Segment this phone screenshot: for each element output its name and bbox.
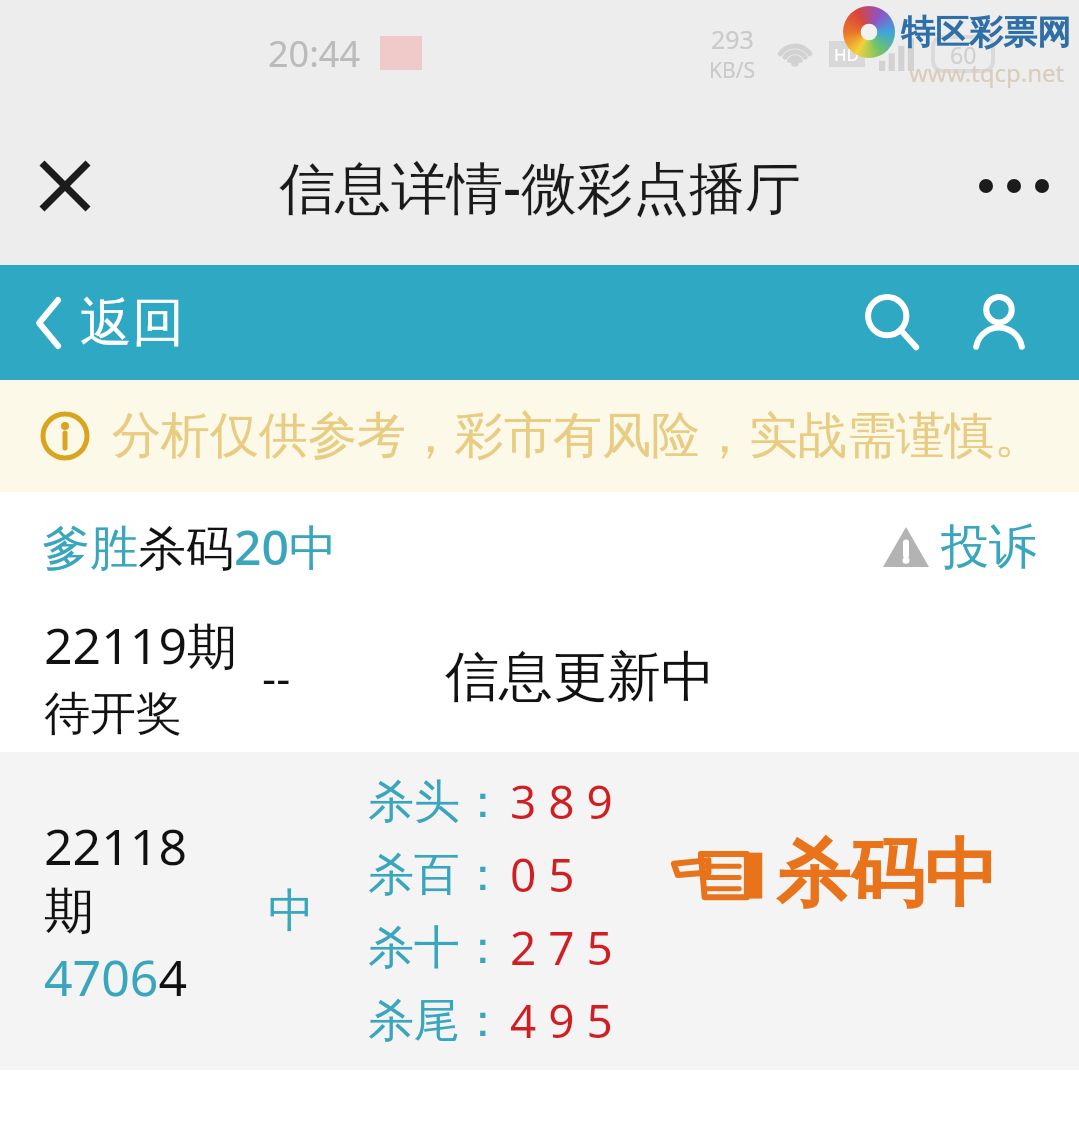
staticText: 信息更新中 — [445, 643, 715, 711]
staticText: 返回 — [80, 290, 184, 356]
staticText: 杀十： — [368, 919, 506, 977]
staticText: 杀百： — [368, 846, 506, 904]
staticText: -- — [262, 647, 291, 707]
staticText: 杀尾： — [368, 992, 506, 1050]
button[interactable]: 返回 — [36, 290, 184, 356]
staticText: 特区彩票网 — [901, 11, 1071, 54]
staticText: 爹胜杀码20中 — [42, 514, 337, 580]
staticText: 投诉 — [941, 517, 1037, 577]
button[interactable]: More options — [971, 143, 1057, 229]
staticText: 0 5 — [510, 843, 575, 906]
staticText: 20:44 — [268, 29, 361, 78]
button[interactable]: Account — [959, 283, 1039, 363]
button[interactable]: 22118 — [0, 752, 1079, 1070]
staticText: 47064 — [44, 943, 187, 1011]
staticText: 22118 — [44, 812, 187, 880]
staticText: 杀头： — [368, 773, 506, 831]
button[interactable]: 投诉 — [881, 517, 1037, 577]
button[interactable]: Close — [24, 145, 106, 227]
staticText: 杀码中 — [776, 828, 998, 921]
staticText: 60 — [950, 39, 977, 70]
staticText: 期 — [44, 880, 94, 943]
staticText: 待开奖 — [44, 685, 182, 743]
staticText: 293 — [711, 22, 754, 56]
staticText: 信息详情-微彩点播厅 — [279, 148, 801, 224]
staticText: 3 8 9 — [510, 770, 613, 833]
staticText: KB/S — [709, 56, 755, 85]
button[interactable]: Search — [853, 283, 933, 363]
staticText: 4 9 5 — [510, 989, 613, 1052]
staticText: www.tqcp.net — [909, 56, 1065, 89]
staticText: 22119期 — [44, 611, 237, 679]
staticText: 2 7 5 — [510, 916, 613, 979]
staticText: 中 — [268, 882, 314, 940]
staticText: HD — [834, 43, 860, 66]
staticText: 分析仅供参考，彩市有风险，实战需谨慎。 — [112, 405, 1043, 467]
